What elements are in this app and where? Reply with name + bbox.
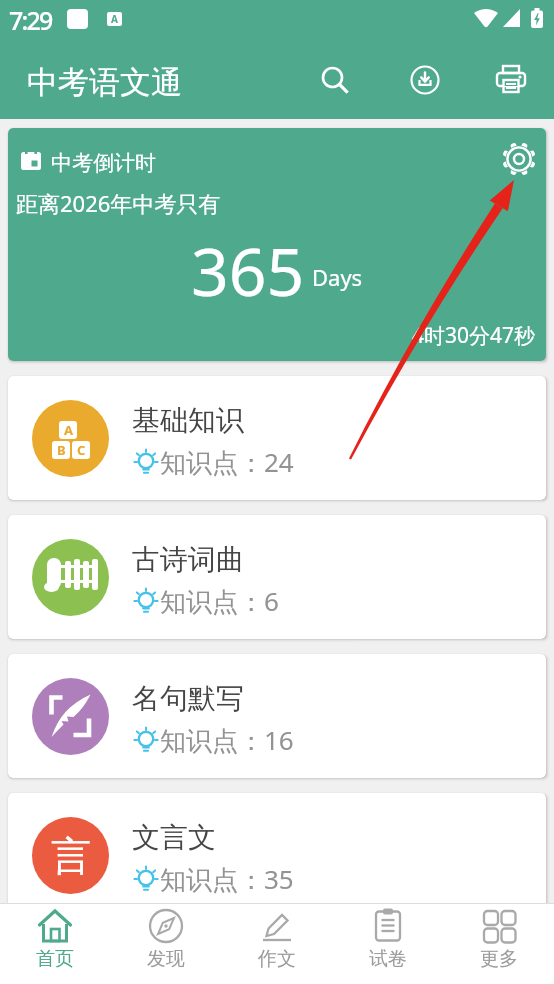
button[interactable]: 言 bbox=[8, 793, 546, 917]
staticText: 中考语文通 bbox=[27, 63, 182, 102]
button[interactable] bbox=[397, 52, 453, 108]
button[interactable] bbox=[307, 52, 363, 108]
staticText: 更多 bbox=[480, 947, 518, 971]
staticText: 发现 bbox=[147, 947, 185, 971]
button[interactable]: 更多 bbox=[443, 904, 554, 984]
staticText: 古诗词曲 bbox=[132, 542, 244, 577]
staticText: 7:29 bbox=[9, 3, 52, 37]
staticText: 知识点：16 bbox=[160, 722, 294, 758]
button[interactable]: 试卷 bbox=[332, 904, 443, 984]
button[interactable]: 作文 bbox=[221, 904, 332, 984]
staticText: 言 bbox=[51, 831, 91, 881]
staticText: 知识点：6 bbox=[160, 583, 279, 619]
button[interactable]: 古诗词曲 bbox=[8, 515, 546, 639]
button[interactable]: 首页 bbox=[0, 904, 110, 984]
button[interactable]: 发现 bbox=[110, 904, 221, 984]
staticText: Days bbox=[312, 262, 363, 292]
staticText: 中考倒计时 bbox=[51, 150, 156, 176]
button[interactable] bbox=[483, 52, 539, 108]
staticText: 365 bbox=[191, 225, 305, 315]
staticText: 知识点：24 bbox=[160, 444, 294, 480]
staticText: A bbox=[111, 12, 118, 26]
staticText: 4时30分47秒 bbox=[412, 321, 536, 350]
staticText: 基础知识 bbox=[132, 403, 244, 438]
staticText: 文言文 bbox=[132, 820, 216, 855]
staticText: 首页 bbox=[36, 947, 74, 971]
button[interactable]: 名句默写 bbox=[8, 654, 546, 778]
staticText: 知识点：35 bbox=[160, 861, 294, 897]
staticText: 试卷 bbox=[369, 947, 407, 971]
staticText: A bbox=[64, 421, 73, 439]
staticText: 名句默写 bbox=[132, 681, 244, 716]
staticText: 作文 bbox=[258, 947, 296, 971]
button[interactable]: A bbox=[8, 376, 546, 500]
staticText: B bbox=[57, 441, 66, 459]
staticText: 距离2026年中考只有 bbox=[16, 188, 221, 218]
button[interactable] bbox=[493, 133, 545, 185]
staticText: C bbox=[77, 441, 86, 459]
